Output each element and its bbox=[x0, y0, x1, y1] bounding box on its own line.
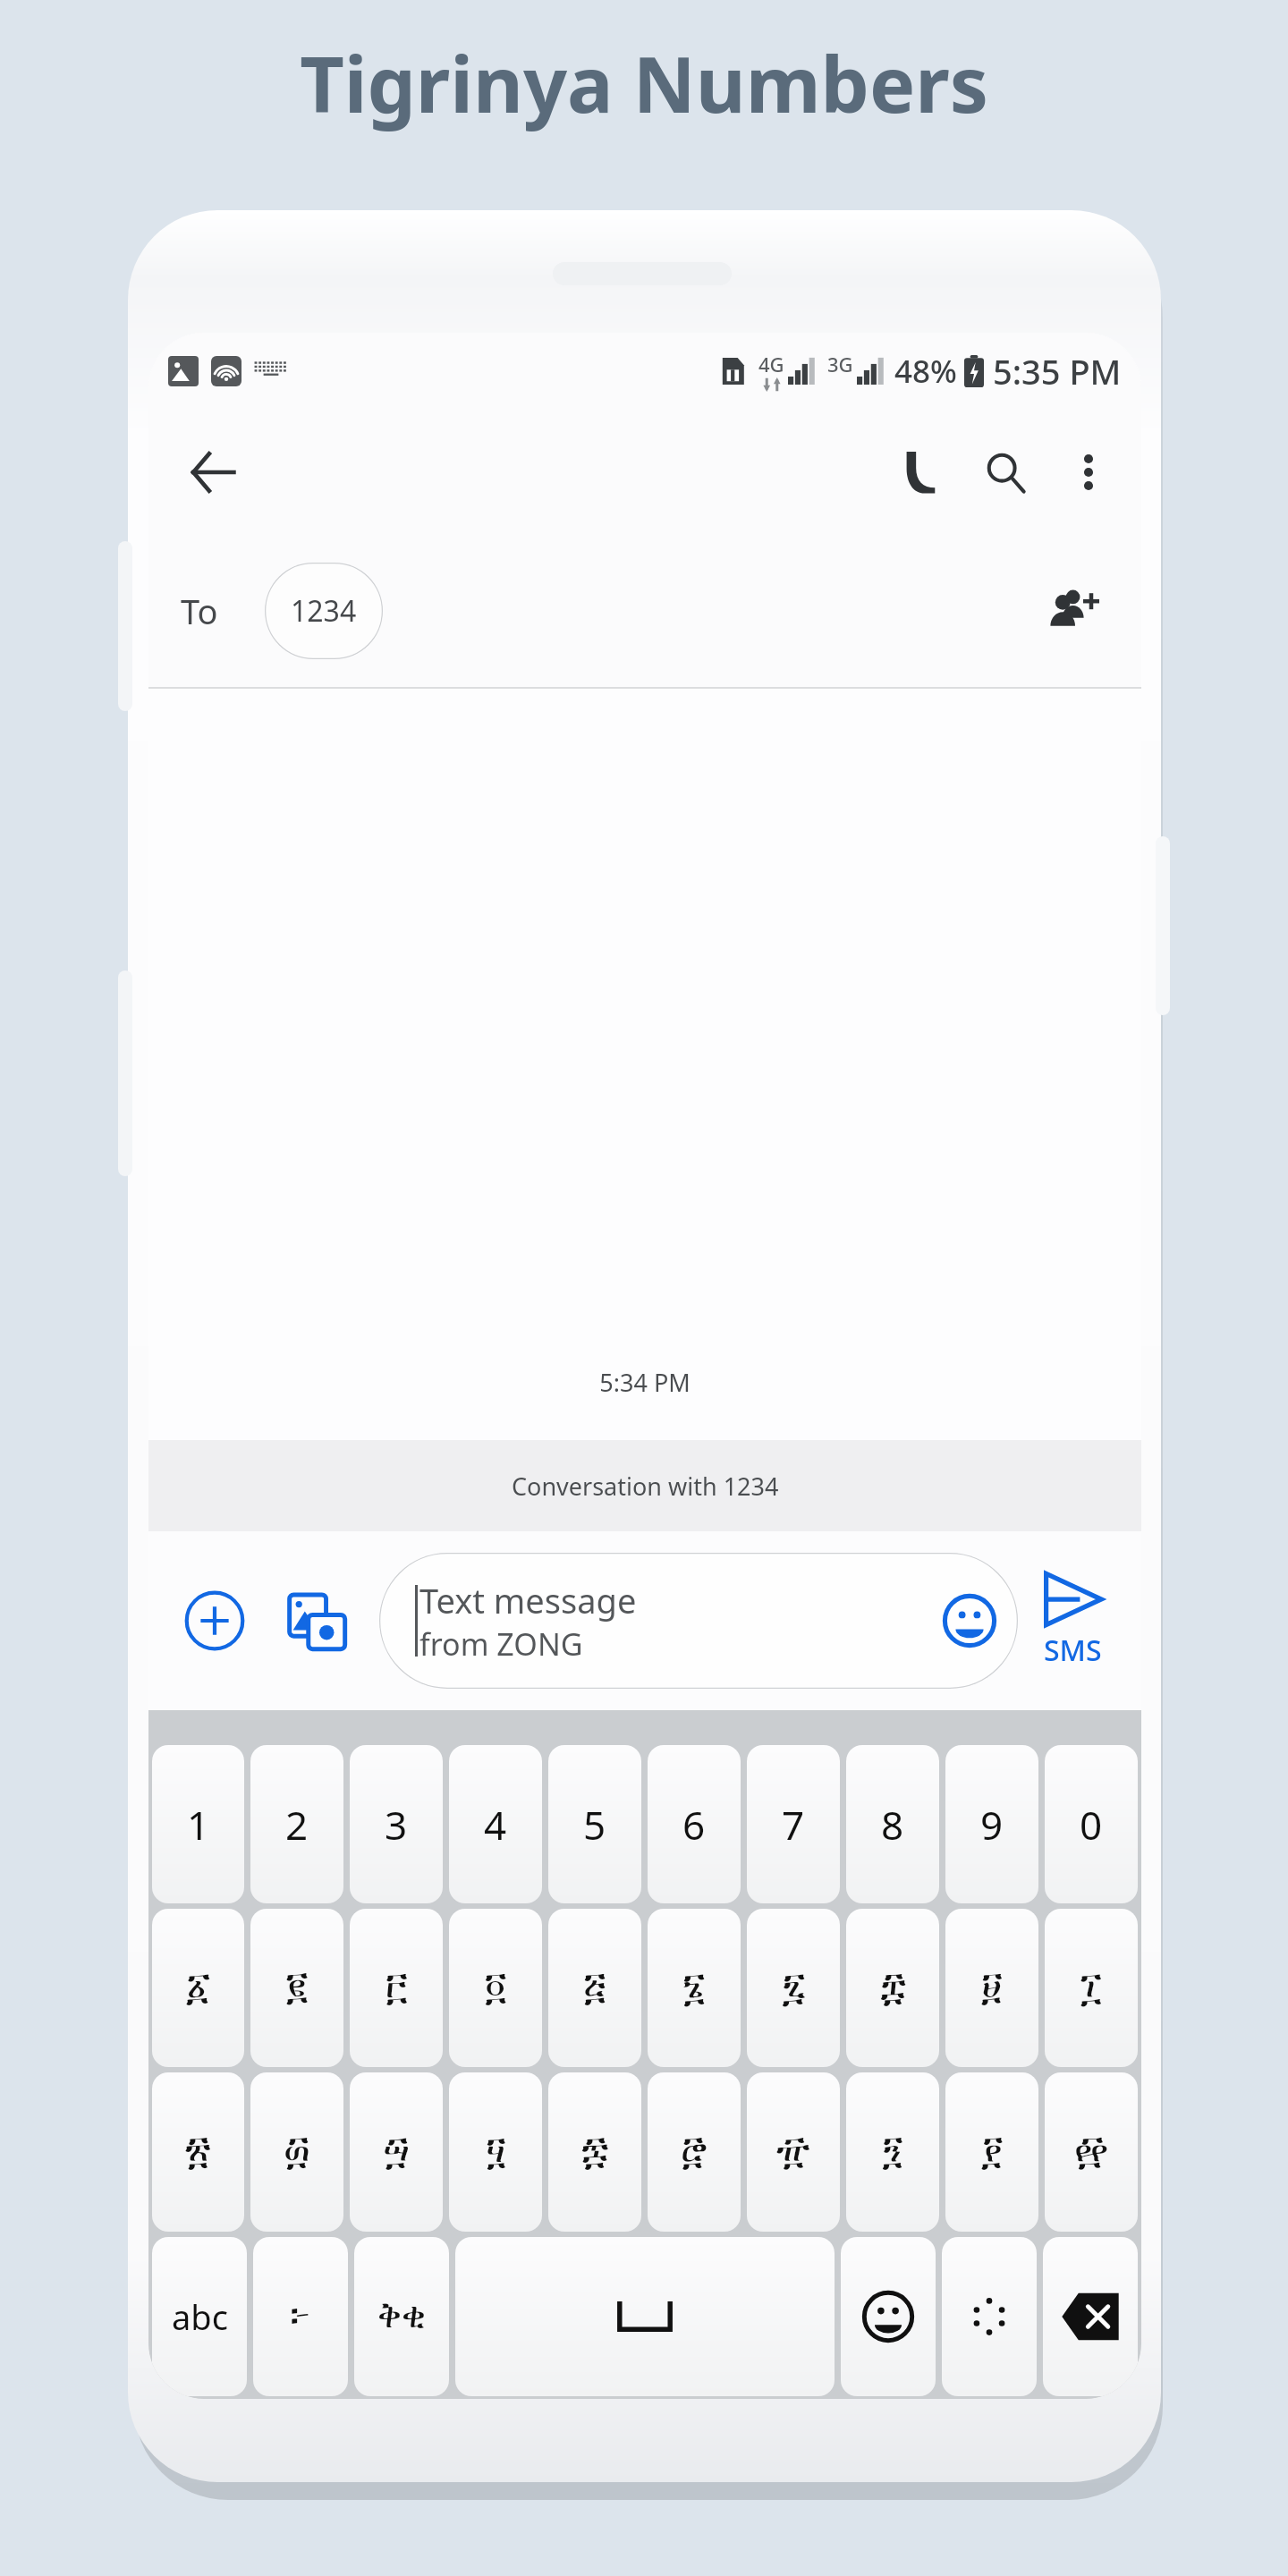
staticText: 4 bbox=[484, 1798, 507, 1851]
button[interactable]: ፺ bbox=[846, 2072, 939, 2232]
staticText: ፺ bbox=[882, 2132, 903, 2172]
button[interactable]: 7 bbox=[747, 1745, 840, 1903]
button[interactable]: ፷ bbox=[548, 2072, 641, 2232]
staticText: ፻ bbox=[981, 2132, 1004, 2172]
button[interactable]: 0 bbox=[1045, 1745, 1138, 1903]
staticText: ፼ bbox=[1074, 2132, 1109, 2172]
button[interactable]: ፴ bbox=[250, 2072, 343, 2232]
staticText: 2 bbox=[285, 1798, 309, 1851]
staticText: abc bbox=[172, 2293, 228, 2340]
button[interactable]: Insert image bbox=[270, 1574, 363, 1667]
staticText: 4G bbox=[758, 351, 784, 377]
button[interactable]: Text message bbox=[379, 1553, 1018, 1689]
staticText: ፹ bbox=[776, 2132, 810, 2172]
button[interactable]: ፮ bbox=[648, 1909, 741, 2067]
button[interactable]: ፹ bbox=[747, 2072, 840, 2232]
button[interactable]: ቅቂ bbox=[354, 2237, 449, 2396]
button[interactable]: ፻ bbox=[945, 2072, 1038, 2232]
staticText: ቅቂ bbox=[377, 2299, 427, 2334]
staticText: To bbox=[181, 588, 218, 634]
button[interactable]: Call bbox=[877, 429, 962, 515]
button[interactable]: 8 bbox=[846, 1745, 939, 1903]
staticText: 1234 bbox=[291, 591, 357, 631]
staticText: ፬ bbox=[485, 1969, 507, 2008]
staticText: ፷ bbox=[581, 2132, 609, 2172]
button[interactable]: ፵ bbox=[350, 2072, 443, 2232]
button[interactable]: 1 bbox=[152, 1745, 244, 1903]
button[interactable]: Send SMS bbox=[1023, 1531, 1122, 1710]
button[interactable]: ፦ bbox=[253, 2237, 348, 2396]
staticText: ፯ bbox=[782, 1969, 806, 2008]
button[interactable]: ፯ bbox=[747, 1909, 840, 2067]
button[interactable]: Search bbox=[962, 429, 1048, 515]
button[interactable]: ፲ bbox=[1045, 1909, 1138, 2067]
staticText: Tigrinya Numbers bbox=[300, 30, 988, 135]
staticText: ፭ bbox=[583, 1969, 606, 2008]
button[interactable] bbox=[841, 2237, 936, 2396]
staticText: Text message bbox=[419, 1577, 637, 1623]
staticText: 48% bbox=[894, 350, 957, 393]
staticText: 6 bbox=[682, 1798, 706, 1851]
button[interactable]: Add attachment bbox=[168, 1574, 261, 1667]
staticText: 7 bbox=[782, 1798, 805, 1851]
button[interactable]: ፶ bbox=[449, 2072, 542, 2232]
staticText: 5:34 PM bbox=[148, 1366, 1141, 1399]
staticText: ፵ bbox=[383, 2132, 411, 2172]
staticText: 5 bbox=[583, 1798, 606, 1851]
staticText: ፶ bbox=[486, 2132, 506, 2172]
button[interactable]: 6 bbox=[648, 1745, 741, 1903]
button[interactable]: 1234 bbox=[265, 563, 383, 659]
button[interactable]: More options bbox=[1048, 432, 1129, 513]
staticText: ፪ bbox=[286, 1969, 309, 2008]
staticText: ፴ bbox=[284, 2132, 310, 2172]
staticText: ፲ bbox=[1080, 1969, 1102, 2008]
button[interactable]: abc bbox=[152, 2237, 247, 2396]
staticText: 0 bbox=[1080, 1798, 1103, 1851]
button[interactable]: ፭ bbox=[548, 1909, 641, 2067]
staticText: ፫ bbox=[386, 1969, 408, 2008]
staticText: ፳ bbox=[185, 2132, 211, 2172]
staticText: 5:35 PM bbox=[993, 348, 1122, 394]
button[interactable] bbox=[1043, 2237, 1138, 2396]
button[interactable]: 2 bbox=[250, 1745, 343, 1903]
button[interactable]: 3 bbox=[350, 1745, 443, 1903]
button[interactable]: Add recipient bbox=[1032, 568, 1118, 654]
button[interactable]: 9 bbox=[945, 1745, 1038, 1903]
staticText: ፱ bbox=[981, 1969, 1003, 2008]
staticText: 3G bbox=[827, 351, 853, 377]
staticText: 3 bbox=[385, 1798, 408, 1851]
staticText: 9 bbox=[980, 1798, 1004, 1851]
button[interactable]: ፱ bbox=[945, 1909, 1038, 2067]
staticText: from ZONG bbox=[419, 1623, 583, 1665]
button[interactable]: Emoji bbox=[927, 1578, 1013, 1664]
button[interactable]: ፩ bbox=[152, 1909, 244, 2067]
staticText: ፩ bbox=[186, 1969, 211, 2008]
staticText: SMS bbox=[1044, 1631, 1102, 1670]
button[interactable]: ፰ bbox=[846, 1909, 939, 2067]
button[interactable] bbox=[455, 2237, 835, 2396]
staticText: ፮ bbox=[682, 1969, 706, 2008]
button[interactable]: ፫ bbox=[350, 1909, 443, 2067]
staticText: 8 bbox=[881, 1798, 904, 1851]
staticText: ፸ bbox=[681, 2132, 708, 2172]
button[interactable]: 4 bbox=[449, 1745, 542, 1903]
staticText: ፦ bbox=[290, 2297, 311, 2336]
staticText: Conversation with 1234 bbox=[512, 1470, 779, 1503]
button[interactable]: ፳ bbox=[152, 2072, 244, 2232]
staticText: 1 bbox=[187, 1798, 210, 1851]
button[interactable]: ፼ bbox=[1045, 2072, 1138, 2232]
button[interactable]: ፸ bbox=[648, 2072, 741, 2232]
button[interactable] bbox=[942, 2237, 1037, 2396]
button[interactable]: ፬ bbox=[449, 1909, 542, 2067]
button[interactable]: 5 bbox=[548, 1745, 641, 1903]
button[interactable]: Back bbox=[170, 429, 256, 515]
staticText: ፰ bbox=[880, 1969, 906, 2008]
button[interactable]: ፪ bbox=[250, 1909, 343, 2067]
